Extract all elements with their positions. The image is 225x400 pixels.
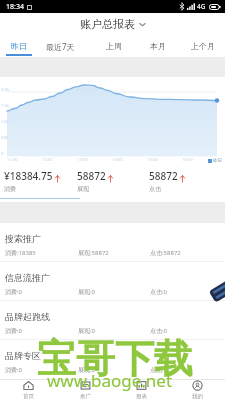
- staticText: 消费: [4, 185, 16, 193]
- staticText: 昨日: [213, 158, 222, 164]
- staticText: 昨日: [11, 41, 27, 51]
- staticText: 品牌专区: [5, 350, 41, 361]
- staticText: 点击: [149, 185, 161, 193]
- button[interactable]: 58872: [77, 165, 147, 196]
- staticText: 展现: [77, 185, 89, 193]
- button[interactable]: 账户总报表: [80, 17, 146, 31]
- staticText: 58872: [149, 169, 178, 183]
- staticText: 11:00: [7, 157, 18, 163]
- staticText: 账户总报表: [80, 17, 135, 31]
- staticText: 1.0k: [1, 119, 10, 125]
- staticText: 报表: [136, 393, 147, 400]
- staticText: 首页: [23, 393, 34, 400]
- staticText: 16:00: [182, 157, 193, 163]
- staticText: 消费:0: [5, 327, 23, 335]
- staticText: 推广: [80, 393, 91, 400]
- button[interactable]: 搜索推广: [0, 223, 225, 262]
- staticText: 最近7天: [46, 41, 75, 52]
- staticText: 我的: [192, 393, 203, 400]
- staticText: 500: [1, 135, 9, 141]
- staticText: 展现:0: [78, 366, 96, 374]
- staticText: 15:00: [147, 157, 158, 163]
- staticText: 12:00: [42, 157, 53, 163]
- button[interactable]: 最近7天: [38, 35, 82, 57]
- staticText: 品牌起跑线: [5, 311, 50, 322]
- staticText: ¥18384.75: [4, 169, 53, 183]
- button[interactable]: 昨日: [0, 35, 41, 57]
- staticText: 18:34: [6, 2, 24, 12]
- staticText: 消费:18385: [5, 249, 36, 257]
- staticText: 搜索推广: [5, 233, 41, 244]
- staticText: 展现:0: [78, 288, 96, 296]
- staticText: 点击:0: [150, 288, 168, 296]
- staticText: 上个月: [191, 41, 215, 51]
- staticText: 消费:0: [5, 288, 23, 296]
- staticText: 点击:58872: [150, 249, 181, 257]
- button[interactable]: 上周: [92, 35, 136, 57]
- staticText: 4G: [197, 2, 206, 11]
- staticText: 14:00: [112, 157, 123, 163]
- button[interactable]: 我的: [169, 380, 225, 400]
- staticText: 0: [1, 151, 4, 157]
- button[interactable]: 本月: [136, 35, 180, 57]
- button[interactable]: 首页: [0, 380, 57, 400]
- staticText: 点击:0: [150, 327, 168, 335]
- staticText: 消费:0: [5, 366, 23, 374]
- staticText: 点击:0: [150, 366, 168, 374]
- staticText: 信息流推广: [5, 272, 50, 283]
- staticText: 展现:0: [78, 327, 96, 335]
- staticText: 宝哥下载: [37, 334, 193, 383]
- staticText: 13:00: [77, 157, 88, 163]
- staticText: 58872: [77, 169, 106, 183]
- button[interactable]: 报表: [113, 380, 169, 400]
- staticText: 本月: [150, 41, 166, 51]
- staticText: 上周: [106, 41, 122, 51]
- button[interactable]: 推广: [57, 380, 113, 400]
- staticText: www.baoge.net: [47, 369, 173, 392]
- button[interactable]: 品牌起跑线: [0, 301, 225, 340]
- button[interactable]: 品牌专区: [0, 340, 225, 379]
- button[interactable]: 信息流推广: [0, 262, 225, 301]
- button[interactable]: 58872: [149, 165, 219, 196]
- staticText: 2.0k: [1, 87, 10, 93]
- staticText: 1.5k: [1, 103, 10, 109]
- button[interactable]: 上个月: [181, 35, 225, 57]
- staticText: 展现:58872: [78, 249, 109, 257]
- button[interactable]: ¥18384.75: [4, 165, 74, 196]
